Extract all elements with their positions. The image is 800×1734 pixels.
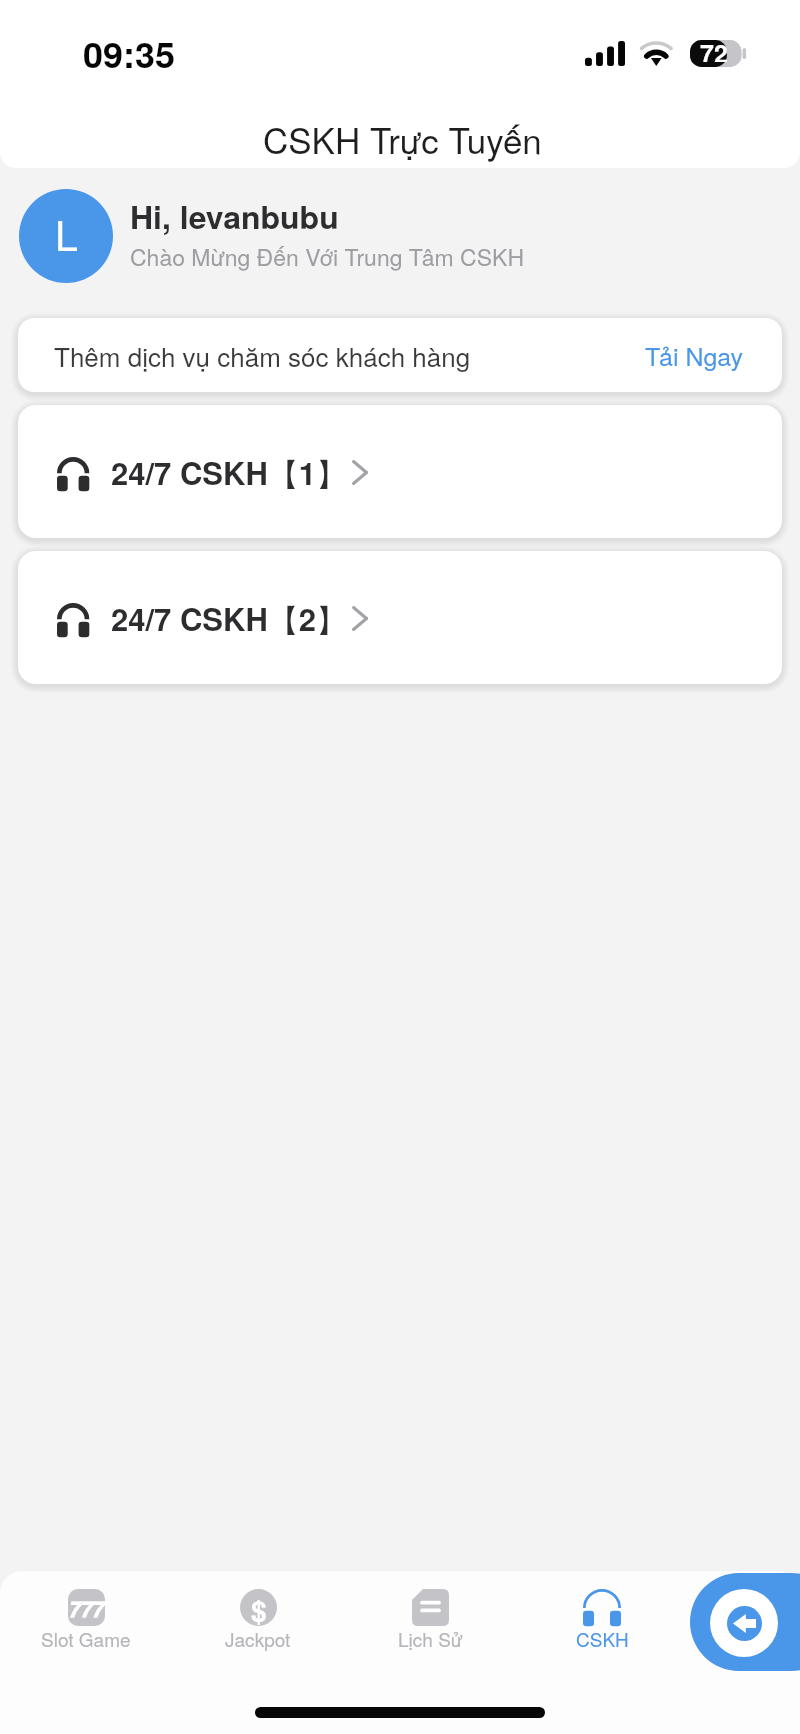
- button[interactable]: CSKH: [516, 1571, 688, 1671]
- staticText: 24/7 CSKH【1】: [111, 450, 348, 494]
- button[interactable]: Lịch Sử: [344, 1571, 516, 1671]
- staticText: CSKH Trực Tuyến: [263, 114, 542, 164]
- staticText: L: [55, 204, 78, 263]
- staticText: Jackpot: [225, 1625, 291, 1652]
- staticText: 24/7 CSKH【2】: [111, 596, 348, 640]
- staticText: CSKH: [576, 1625, 629, 1652]
- staticText: 72: [700, 35, 728, 62]
- staticText: Lịch Sử: [398, 1625, 463, 1652]
- staticText: Hi, levanbubu: [130, 193, 339, 239]
- button[interactable]: $: [172, 1571, 344, 1671]
- staticText: 777: [69, 1593, 105, 1623]
- button[interactable]: Thêm dịch vụ chăm sóc khách hàng: [18, 318, 782, 392]
- staticText: Chào Mừng Đến Với Trung Tâm CSKH: [130, 240, 525, 273]
- button[interactable]: 24/7 CSKH【2】: [18, 551, 782, 684]
- staticText: 09:35: [83, 27, 176, 79]
- button[interactable]: 777: [0, 1571, 172, 1671]
- staticText: Slot Game: [41, 1625, 131, 1652]
- button[interactable]: 24/7 CSKH【1】: [18, 405, 782, 538]
- staticText: $: [251, 1589, 267, 1626]
- staticText: Tải Ngay: [645, 337, 744, 373]
- button[interactable]: Back: [690, 1573, 800, 1671]
- staticText: Thêm dịch vụ chăm sóc khách hàng: [54, 337, 471, 374]
